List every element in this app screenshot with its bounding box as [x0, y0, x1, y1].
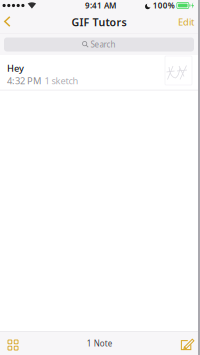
button[interactable]: Folders — [0, 332, 30, 354]
staticText: GIF Tutors — [71, 15, 126, 29]
staticText: 1 Note — [87, 338, 113, 349]
staticText: 1 sketch — [44, 74, 78, 87]
button[interactable]: New Note — [169, 332, 198, 355]
staticText: Hey — [7, 62, 24, 74]
button[interactable]: Edit — [168, 11, 198, 33]
button[interactable]: Search — [4, 37, 194, 51]
staticText: 100% — [153, 0, 175, 11]
staticText: Edit — [178, 16, 194, 28]
button[interactable]: Hey — [0, 55, 198, 90]
staticText: 9:41 AM — [85, 0, 116, 11]
button[interactable]: Back — [0, 11, 21, 32]
staticText: 4:32 PM — [7, 74, 41, 87]
staticText: Search — [90, 39, 115, 50]
